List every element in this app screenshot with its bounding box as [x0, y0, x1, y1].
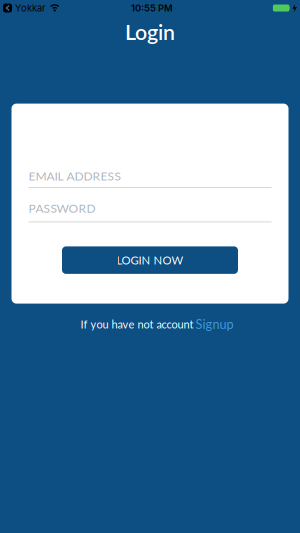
button[interactable]: EMAIL ADDRESS	[28, 169, 271, 188]
button[interactable]: Signup	[195, 317, 233, 332]
staticText: PASSWORD	[28, 201, 95, 215]
staticText: If you have not account	[80, 318, 193, 331]
staticText: LOGIN NOW	[116, 253, 183, 267]
staticText: Yokkar	[15, 2, 46, 14]
staticText: EMAIL ADDRESS	[28, 169, 121, 183]
staticText: Login	[125, 19, 175, 45]
staticText: Signup	[195, 317, 233, 332]
button[interactable]: PASSWORD	[28, 188, 271, 222]
button[interactable]: LOGIN NOW	[62, 246, 238, 274]
staticText: 10:55 PM	[131, 2, 173, 14]
